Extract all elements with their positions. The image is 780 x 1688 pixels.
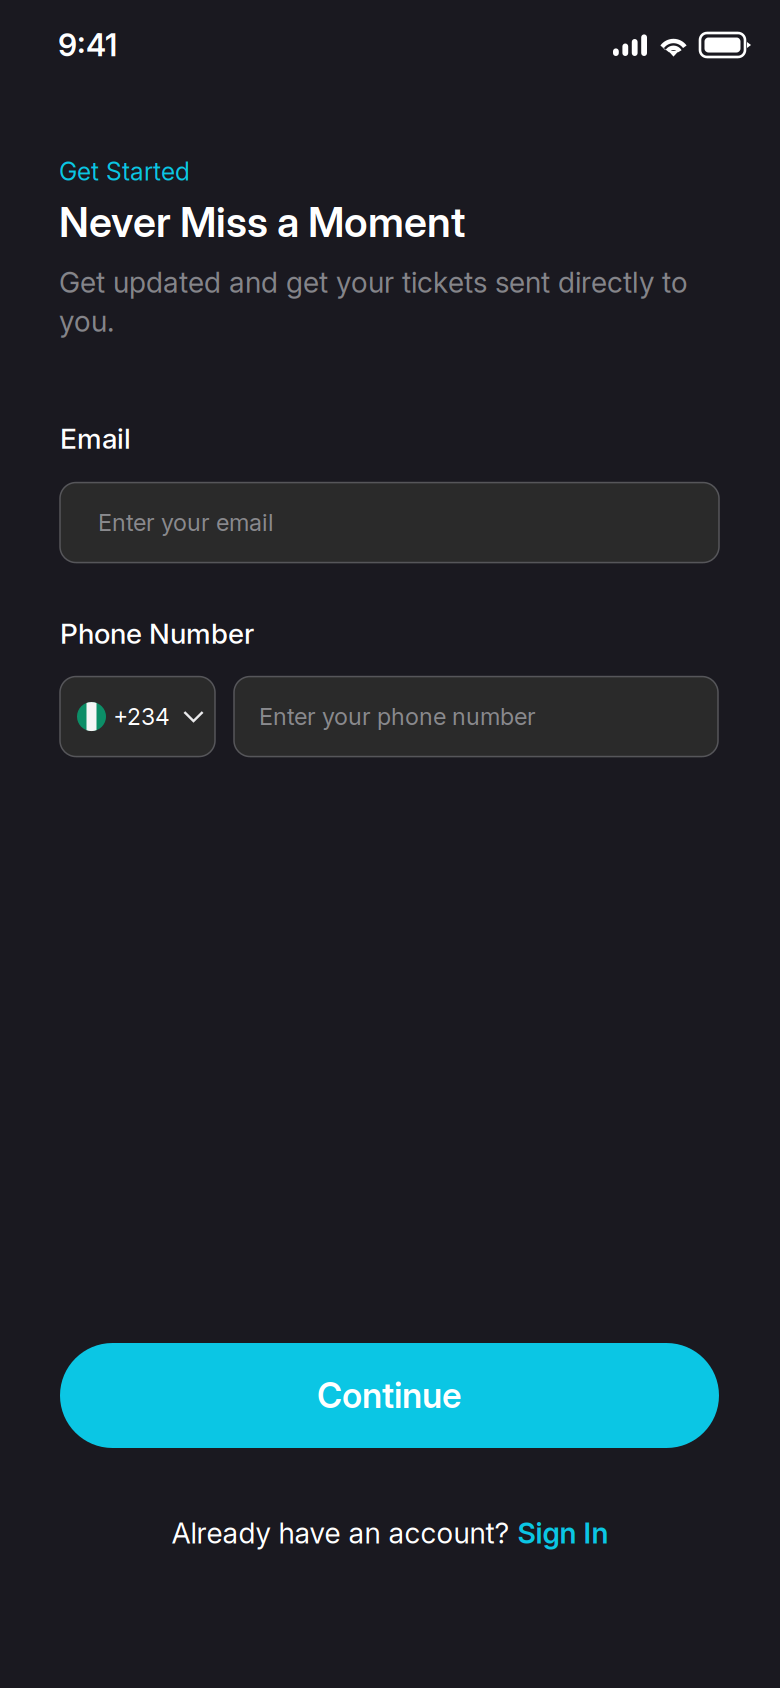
- staticText: +234: [113, 703, 170, 730]
- staticText: Get updated and get your tickets sent di…: [59, 265, 688, 339]
- staticText: Enter your email: [98, 508, 274, 537]
- staticText: Already have an account?: [171, 1516, 517, 1550]
- staticText: Sign In: [517, 1516, 608, 1550]
- staticText: Never Miss a Moment: [59, 197, 465, 247]
- staticText: Get Started: [59, 157, 190, 186]
- staticText: Email: [60, 422, 131, 455]
- button[interactable]: +234: [60, 677, 215, 757]
- staticText: Phone Number: [60, 617, 254, 650]
- staticText: Continue: [317, 1375, 462, 1416]
- staticText: 9:41: [58, 26, 117, 63]
- staticText: Enter your phone number: [259, 702, 536, 731]
- button[interactable]: Continue: [60, 1343, 719, 1448]
- button[interactable]: Already have an account?: [0, 1503, 780, 1563]
